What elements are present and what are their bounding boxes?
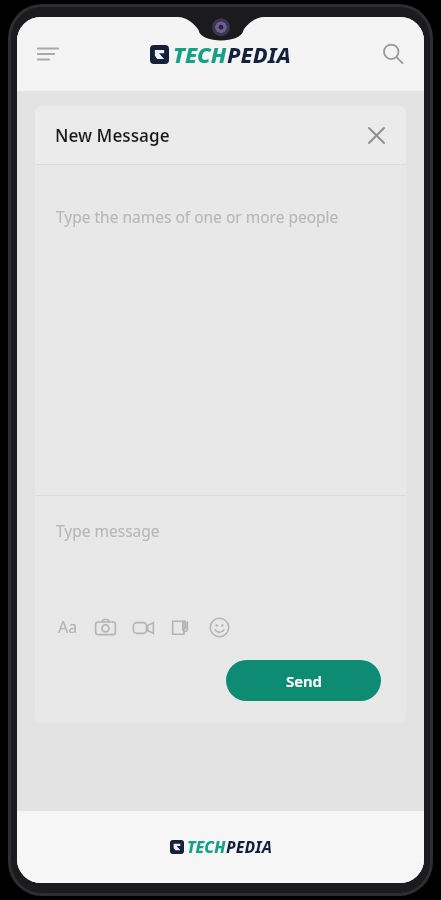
button[interactable]: Close [360,119,392,151]
button[interactable]: Type message [35,496,406,606]
staticText: Type the names of one or more people [56,206,339,227]
staticText: Type message [56,520,160,541]
button[interactable]: Video [129,613,157,641]
staticText: PEDIA [227,39,291,69]
staticText: Send [286,671,322,691]
button[interactable]: Search [376,37,410,71]
staticText: TECH [187,836,226,858]
staticText: TECH [173,39,227,69]
button[interactable]: Type the names of one or more people [35,165,406,495]
button[interactable]: Menu [31,37,65,71]
staticText: PEDIA [226,836,272,858]
button[interactable]: Camera [91,613,119,641]
button[interactable]: Emoji [205,613,233,641]
button[interactable]: Attach file [167,613,195,641]
button[interactable]: Formatting [55,614,81,640]
button[interactable]: Send [226,660,381,701]
staticText: New Message [55,124,170,147]
staticText: Aa [58,616,78,638]
